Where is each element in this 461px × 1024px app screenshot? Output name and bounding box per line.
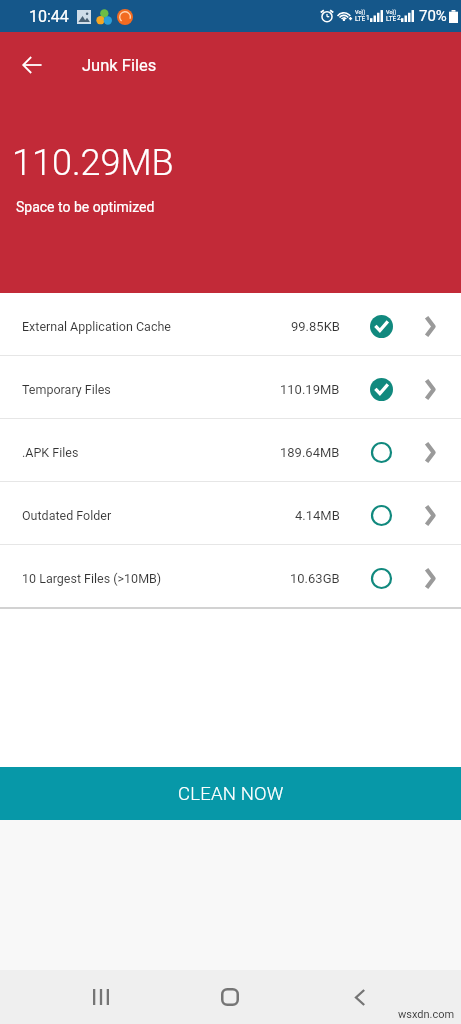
button[interactable]: Select 10 Largest Files (>10MB) <box>369 564 393 588</box>
staticText: 110.19MB <box>280 382 340 397</box>
staticText: wsxdn.com <box>398 1008 455 1021</box>
button[interactable]: Open 10 Largest Files (>10MB) <box>423 561 437 591</box>
staticText: 4.14MB <box>295 508 340 523</box>
button[interactable]: Open Temporary Files <box>423 372 437 402</box>
button[interactable]: Open External Application Cache <box>423 309 437 339</box>
button[interactable]: Recents <box>0 970 153 1024</box>
button[interactable]: Outdated Folder <box>0 482 461 544</box>
button[interactable]: Select Temporary Files <box>369 375 393 399</box>
button[interactable]: Open Outdated Folder <box>423 498 437 528</box>
button[interactable]: Back <box>12 45 52 85</box>
staticText: Space to be optimized <box>16 199 155 215</box>
button[interactable]: CLEAN NOW <box>0 767 461 820</box>
button[interactable]: .APK Files <box>0 419 461 481</box>
staticText: Temporary Files <box>22 382 111 397</box>
staticText: 70% <box>419 7 447 25</box>
button[interactable]: Home <box>153 970 307 1024</box>
button[interactable]: Select External Application Cache <box>369 312 393 336</box>
staticText: LTE <box>386 15 397 23</box>
button[interactable]: Select Outdated Folder <box>369 501 393 525</box>
staticText: 10 Largest Files (>10MB) <box>22 571 162 586</box>
staticText: 2 <box>397 14 401 22</box>
staticText: LTE <box>355 15 366 23</box>
button[interactable]: Back <box>307 970 461 1024</box>
button[interactable]: Temporary Files <box>0 356 461 418</box>
staticText: Vo)) <box>355 9 366 15</box>
staticText: 10:44 <box>29 7 69 26</box>
staticText: External Application Cache <box>22 319 171 334</box>
button[interactable]: External Application Cache <box>0 293 461 355</box>
staticText: .APK Files <box>22 445 79 460</box>
staticText: CLEAN NOW <box>178 783 284 805</box>
button[interactable]: Open .APK Files <box>423 435 437 465</box>
staticText: 1 <box>366 14 370 22</box>
staticText: Outdated Folder <box>22 508 112 523</box>
staticText: Junk Files <box>82 56 157 75</box>
staticText: 189.64MB <box>280 445 340 460</box>
button[interactable]: Select .APK Files <box>369 438 393 462</box>
button[interactable]: 10 Largest Files (>10MB) <box>0 545 461 607</box>
staticText: Vo)) <box>386 9 397 15</box>
staticText: 110.29MB <box>12 142 174 184</box>
staticText: 10.63GB <box>290 571 340 586</box>
staticText: 99.85KB <box>291 319 340 334</box>
